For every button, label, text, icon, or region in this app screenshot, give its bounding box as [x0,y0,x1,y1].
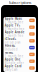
staticText: Apple TV+ [5,24,21,27]
staticText: Get [30,33,33,35]
button[interactable]: Apple Card [3,65,36,71]
staticText: Subscriptions [8,0,31,5]
staticText: News+ [5,51,14,54]
staticText: Get [30,67,33,69]
button[interactable]: iCloud+ [3,37,36,44]
staticText: 50 GB plan [5,41,21,44]
staticText: Daily Cash [5,68,18,71]
staticText: Included [5,48,18,51]
button[interactable]: Apple Music [3,17,36,24]
staticText: 1 month free [5,34,24,37]
staticText: Get [30,60,33,62]
staticText: Apple Music [5,17,22,20]
staticText: 1 month free [5,54,24,58]
staticText: 1 month free [5,20,24,24]
staticText: Get [30,19,33,21]
staticText: Get [30,26,33,28]
staticText: Get [30,40,33,42]
button[interactable]: Apple Arcade [3,31,36,37]
staticText: Get [30,53,33,55]
staticText: Apple Arcade [5,30,25,34]
button[interactable]: Fitness+ [3,44,36,51]
staticText: iCloud+ [5,37,17,41]
button[interactable]: Apple One [3,58,36,65]
button[interactable]: Apple TV+ [3,24,36,31]
staticText: Apple One [5,58,21,61]
staticText: Fitness+ [5,44,16,48]
staticText: Bundle offer [5,61,24,65]
button[interactable]: News+ [3,51,36,58]
staticText: 3 months free [5,27,25,31]
staticText: Apple Card [5,64,22,68]
staticText: Open [30,47,34,48]
